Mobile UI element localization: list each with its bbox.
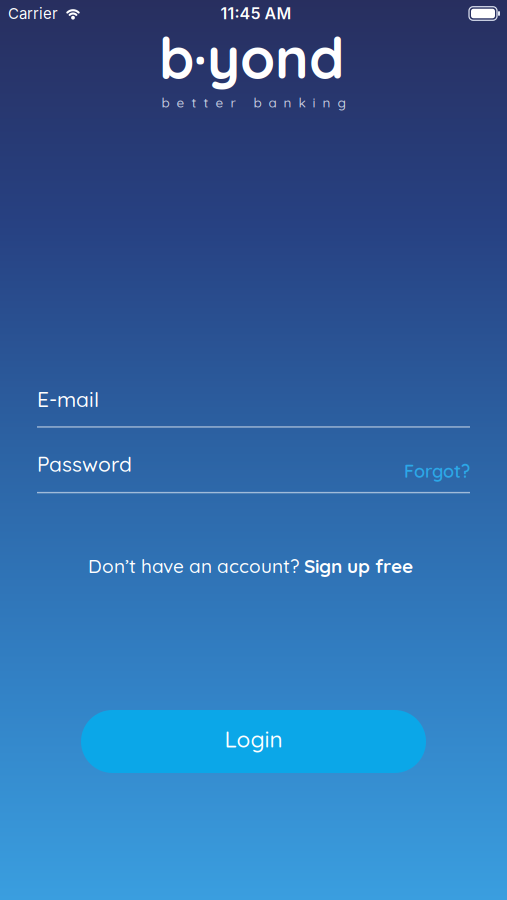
- staticText: Carrier: [8, 4, 58, 22]
- button[interactable]: Forgot?: [404, 460, 470, 482]
- staticText: Password: [37, 451, 132, 477]
- staticText: Sign up free: [304, 554, 413, 578]
- button[interactable]: Password: [37, 451, 470, 493]
- staticText: better banking: [161, 94, 345, 111]
- staticText: E-mail: [37, 386, 99, 412]
- staticText: Don’t have an account?: [88, 554, 299, 578]
- staticText: Login: [224, 725, 282, 753]
- button[interactable]: E-mail: [37, 386, 470, 428]
- staticText: Forgot?: [404, 460, 470, 482]
- staticText: 11:45 AM: [220, 4, 291, 23]
- button[interactable]: Login: [81, 710, 426, 773]
- staticText: b·yond: [159, 22, 344, 93]
- button[interactable]: Don’t have an account?: [88, 554, 413, 578]
